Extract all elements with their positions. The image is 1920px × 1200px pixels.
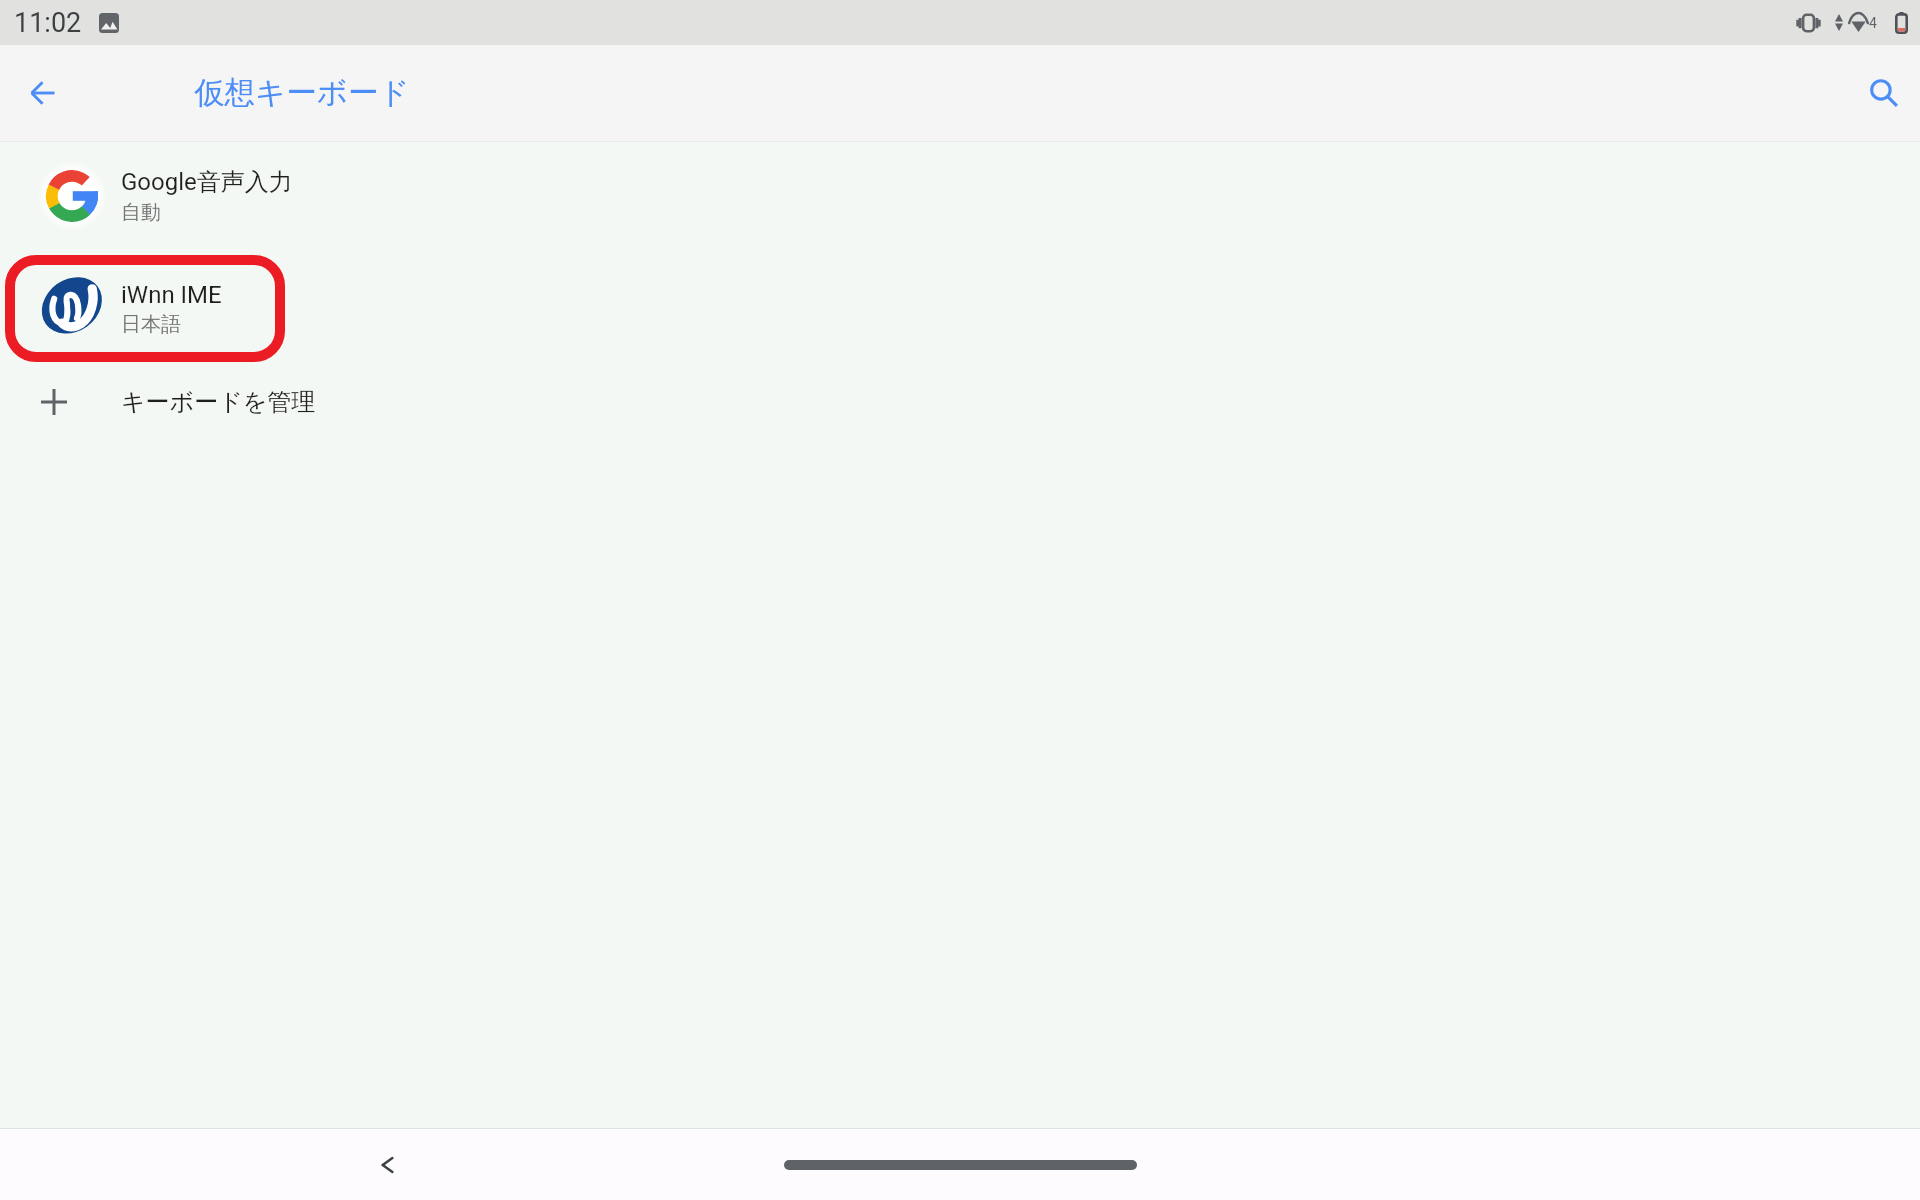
staticText: 11:02: [14, 7, 82, 39]
button[interactable]: Google音声入力: [0, 150, 1920, 241]
staticText: 日本語: [121, 312, 181, 337]
button[interactable]: Back: [363, 1140, 413, 1190]
button[interactable]: Home: [784, 1160, 1137, 1170]
staticText: Google音声入力: [121, 167, 293, 197]
button[interactable]: Search: [1857, 66, 1911, 120]
button[interactable]: Back: [20, 70, 66, 116]
staticText: iWnn IME: [121, 281, 222, 309]
staticText: 自動: [121, 200, 161, 225]
button[interactable]: キーボードを管理: [0, 372, 1920, 432]
button[interactable]: iWnn IME: [0, 255, 1920, 362]
staticText: 仮想キーボード: [194, 74, 410, 112]
staticText: 4: [1869, 15, 1877, 31]
staticText: キーボードを管理: [121, 387, 316, 417]
